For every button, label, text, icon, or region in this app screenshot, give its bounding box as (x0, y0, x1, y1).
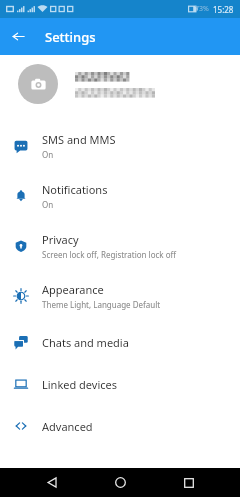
staticText: Advanced (42, 419, 93, 434)
button[interactable]: Home (103, 468, 137, 497)
staticText: Appearance (42, 282, 104, 297)
staticText: Theme Light, Language Default (42, 299, 161, 310)
button[interactable]: Advanced (0, 405, 240, 447)
button[interactable]: Chats and media (0, 321, 240, 363)
staticText: On (42, 149, 54, 160)
staticText: On (42, 199, 54, 210)
button[interactable]: Recent apps (172, 468, 206, 497)
button[interactable]: Linked devices (0, 363, 240, 405)
button[interactable]: Appearance (0, 271, 240, 321)
staticText: Chats and media (42, 335, 129, 350)
button[interactable]: Privacy (0, 221, 240, 271)
button[interactable]: Notifications (0, 171, 240, 221)
button[interactable] (0, 55, 240, 113)
button[interactable]: Back (35, 468, 69, 497)
staticText: Privacy (42, 232, 79, 247)
staticText: Linked devices (42, 377, 118, 392)
staticText: 15:28 (213, 4, 234, 15)
button[interactable]: Navigate up (0, 18, 37, 55)
staticText: 73% (195, 4, 209, 14)
staticText: Notifications (42, 182, 108, 197)
staticText: Screen lock off, Registration lock off (42, 249, 177, 260)
staticText: SMS and MMS (42, 132, 116, 147)
staticText: Settings (45, 28, 96, 46)
button[interactable]: SMS and MMS (0, 121, 240, 171)
